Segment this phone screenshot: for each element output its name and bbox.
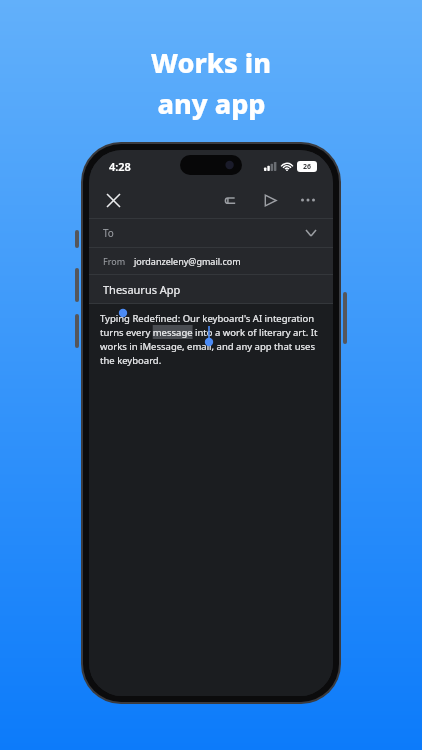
staticText: jordanzeleny@gmail.com (134, 255, 241, 267)
other: Expand recipients (303, 225, 319, 241)
button[interactable]: Attach (217, 187, 243, 213)
staticText: Typing Redefined: Our keyboard's AI inte… (100, 312, 322, 367)
staticText: 26 (303, 162, 312, 172)
staticText: Thesaurus App (103, 282, 181, 297)
button[interactable]: Thesaurus App (89, 275, 333, 303)
button[interactable]: Send (257, 187, 283, 213)
staticText: 4:28 (109, 159, 131, 174)
button[interactable]: To (89, 219, 333, 247)
staticText: To (103, 226, 114, 240)
button[interactable]: From (89, 248, 333, 274)
button[interactable]: Close (99, 186, 127, 214)
button[interactable]: More options (295, 187, 321, 213)
staticText: Works in (151, 44, 271, 81)
staticText: any app (157, 85, 266, 122)
staticText: From (103, 255, 126, 267)
button[interactable]: Typing Redefined: Our keyboard's AI inte… (89, 304, 333, 696)
